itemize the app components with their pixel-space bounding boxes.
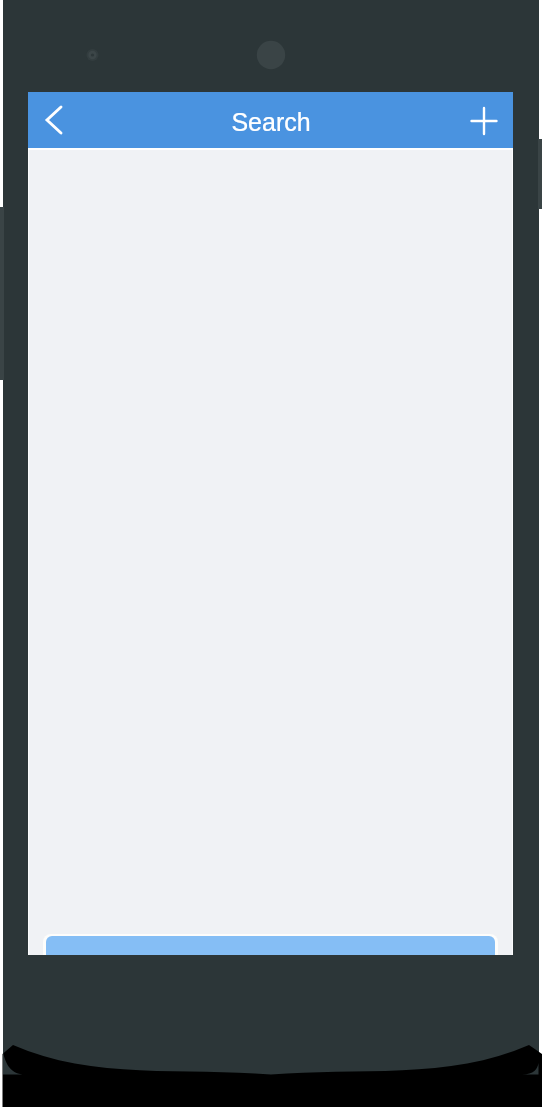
- button[interactable]: Back: [28, 96, 76, 144]
- button[interactable]: [46, 936, 495, 955]
- staticText: Search: [231, 108, 311, 136]
- button[interactable]: Add: [465, 96, 513, 144]
